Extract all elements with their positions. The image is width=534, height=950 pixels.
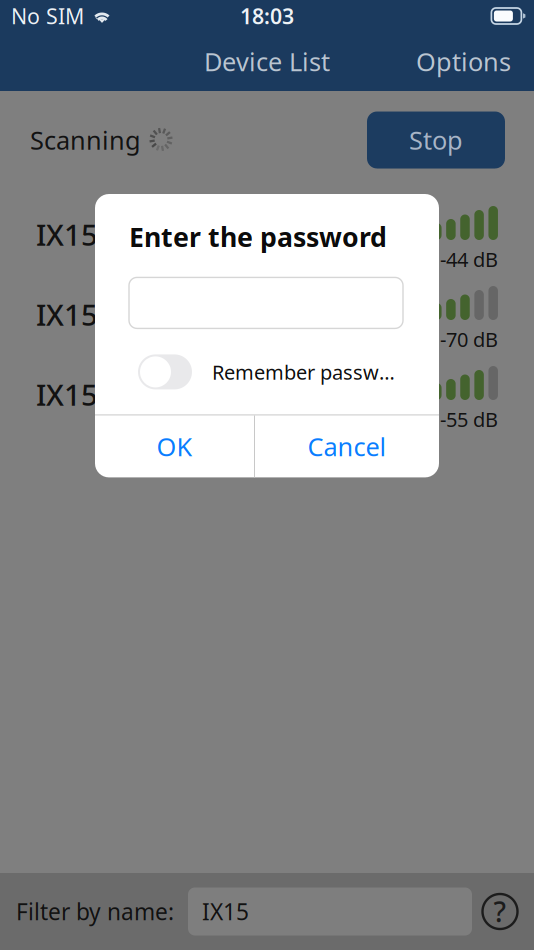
staticText: Device List — [204, 45, 330, 78]
staticText: -70 dB — [440, 326, 498, 353]
button[interactable]: IX15 — [0, 349, 534, 429]
button[interactable]: Options — [404, 32, 523, 91]
staticText: IX15 — [36, 215, 98, 254]
staticText: ? — [493, 893, 506, 930]
staticText: Cancel — [307, 430, 386, 463]
staticText: No SIM — [11, 2, 84, 30]
staticText: IX15 — [202, 896, 249, 926]
button[interactable]: IX15 — [0, 189, 534, 269]
staticText: Remember password — [212, 359, 403, 385]
staticText: Enter the password — [129, 219, 387, 254]
button[interactable]: Cancel — [255, 415, 439, 477]
staticText: Options — [416, 45, 511, 78]
button[interactable]: Stop — [367, 111, 505, 168]
staticText: -55 dB — [440, 406, 498, 433]
staticText: IX15 — [36, 295, 98, 334]
staticText: 18:03 — [240, 2, 294, 30]
staticText: Stop — [409, 123, 463, 157]
staticText: Filter by name: — [16, 896, 174, 926]
staticText: -44 dB — [440, 246, 498, 273]
button[interactable]: Help — [479, 890, 521, 932]
button[interactable]: OK — [95, 415, 254, 477]
button[interactable]: IX15 — [0, 269, 534, 349]
staticText: OK — [156, 430, 192, 463]
staticText: Scanning — [30, 123, 141, 157]
staticText: IX15 — [36, 375, 98, 414]
